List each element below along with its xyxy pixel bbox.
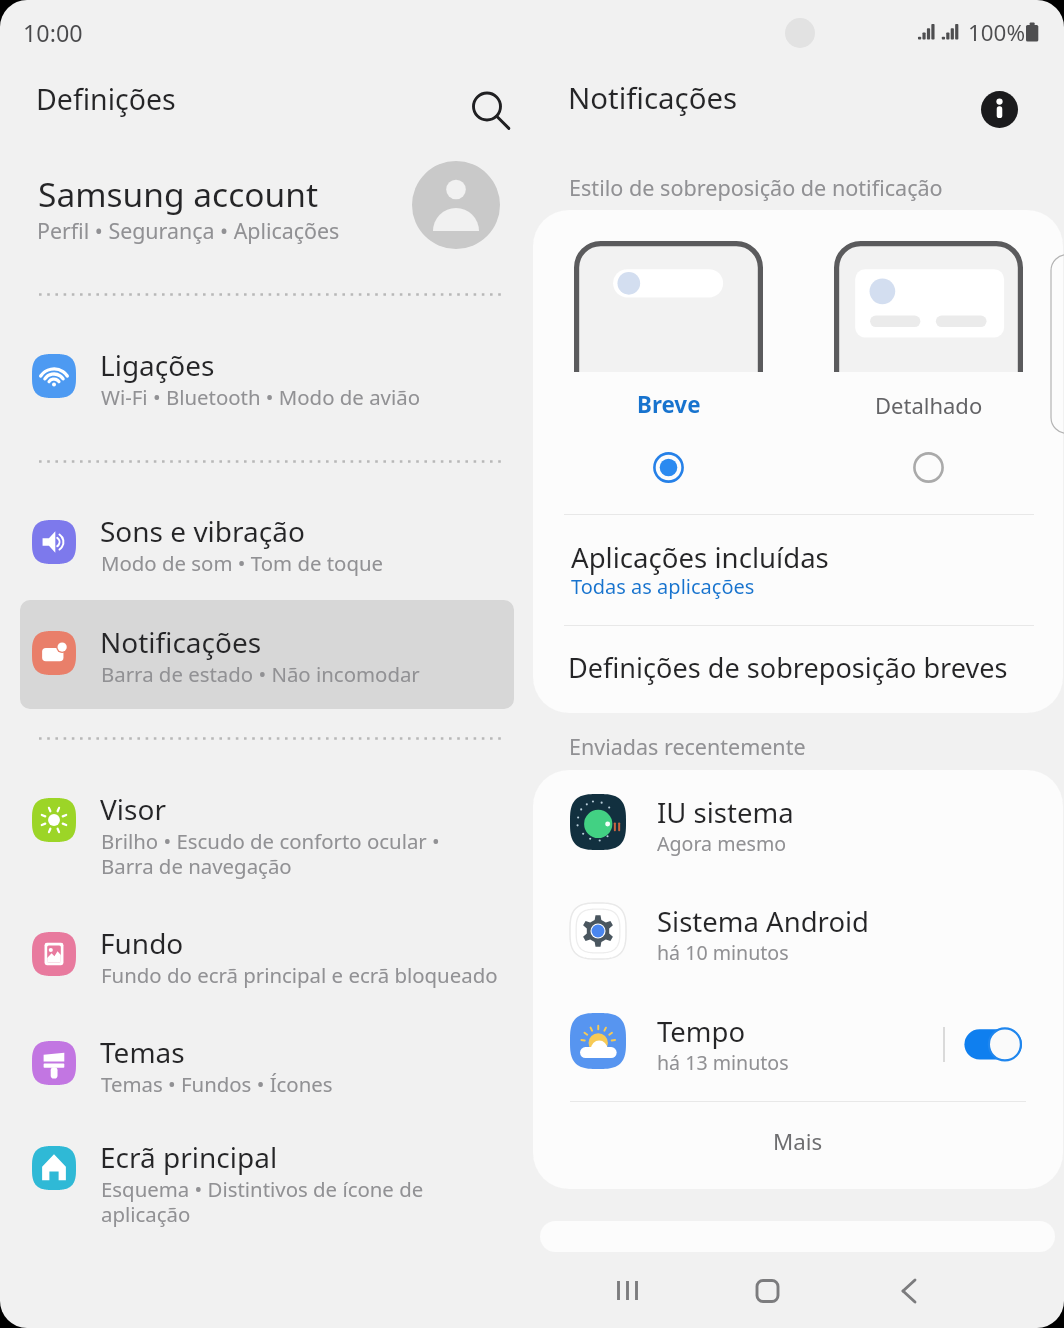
staticText: Notificações xyxy=(568,78,738,118)
button[interactable] xyxy=(18,1117,510,1247)
staticText: 10:00 xyxy=(23,17,83,49)
staticText: Definições de sobreposição breves xyxy=(568,649,1008,686)
button[interactable] xyxy=(18,602,510,708)
button[interactable] xyxy=(533,626,1060,705)
button[interactable] xyxy=(533,986,1060,1095)
button[interactable] xyxy=(18,155,510,257)
staticText: Samsung account xyxy=(38,171,318,217)
staticText: Barra de navegação xyxy=(101,852,292,880)
staticText: Fundo do ecrã principal e ecrã bloqueado xyxy=(101,961,498,989)
button[interactable] xyxy=(18,769,510,899)
staticText: Definições xyxy=(36,80,176,119)
button[interactable]: Back xyxy=(870,1252,948,1328)
staticText: Temas xyxy=(100,1033,185,1071)
button[interactable] xyxy=(533,876,1060,985)
staticText: IU sistema xyxy=(657,794,794,831)
staticText: Wi-Fi • Bluetooth • Modo de avião xyxy=(101,383,420,411)
button[interactable]: Search xyxy=(450,70,528,148)
button[interactable]: Home xyxy=(729,1252,807,1328)
staticText: Brilho • Escudo de conforto ocular • xyxy=(101,827,440,855)
staticText: Fundo xyxy=(100,924,184,962)
button[interactable] xyxy=(18,325,510,431)
button[interactable] xyxy=(533,767,1060,876)
button[interactable] xyxy=(18,491,510,597)
staticText: Tempo xyxy=(657,1013,746,1050)
staticText: Sons e vibração xyxy=(100,512,305,550)
button[interactable]: Breve xyxy=(640,439,697,496)
staticText: Mais xyxy=(773,1126,823,1156)
staticText: Estilo de sobreposição de notificação xyxy=(569,173,943,202)
button[interactable]: Detalhado xyxy=(900,439,957,496)
staticText: há 13 minutos xyxy=(657,1049,789,1076)
staticText: Enviadas recentemente xyxy=(569,732,806,761)
button[interactable]: Information xyxy=(960,70,1038,148)
staticText: Agora mesmo xyxy=(657,830,787,857)
button[interactable] xyxy=(533,518,1060,624)
staticText: Detalhado xyxy=(875,390,983,420)
staticText: Breve xyxy=(637,389,701,420)
button[interactable] xyxy=(533,1102,1060,1186)
staticText: aplicação xyxy=(101,1200,191,1228)
staticText: 100% xyxy=(968,17,1026,48)
staticText: Visor xyxy=(100,790,166,828)
staticText: Notificações xyxy=(100,623,262,661)
staticText: Todas as aplicações xyxy=(571,573,755,600)
button[interactable] xyxy=(18,903,510,1009)
staticText: Perfil • Segurança • Aplicações xyxy=(37,216,340,245)
staticText: Modo de som • Tom de toque xyxy=(101,549,384,577)
staticText: Ecrã principal xyxy=(100,1138,278,1176)
staticText: Ligações xyxy=(100,346,215,384)
staticText: Temas • Fundos • Ícones xyxy=(101,1070,333,1098)
staticText: Aplicações incluídas xyxy=(571,538,829,576)
button[interactable]: Toggle Tempo xyxy=(958,1022,1030,1094)
staticText: há 10 minutos xyxy=(657,939,789,966)
staticText: Sistema Android xyxy=(657,903,870,940)
staticText: Esquema • Distintivos de ícone de xyxy=(101,1175,424,1203)
button[interactable]: Recents xyxy=(589,1252,667,1328)
staticText: Barra de estado • Não incomodar xyxy=(101,660,420,688)
button[interactable] xyxy=(18,1012,510,1118)
